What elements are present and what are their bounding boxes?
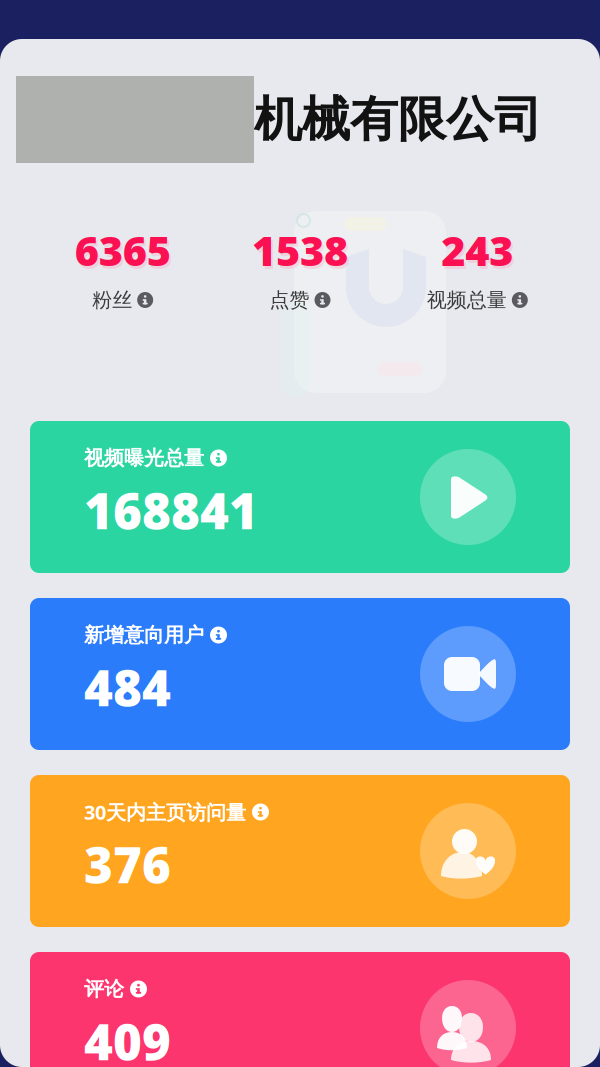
button[interactable]: 评论	[30, 952, 570, 1067]
staticText: 409	[84, 1008, 171, 1067]
button[interactable]: 视频曝光总量	[30, 421, 570, 573]
button[interactable]: 30天内主页访问量	[30, 775, 570, 927]
staticText: 243	[441, 223, 513, 277]
staticText: 6365	[75, 223, 171, 277]
staticText: 6365	[77, 226, 173, 280]
staticText: 30天内主页访问量	[84, 799, 246, 825]
staticText: 评论	[84, 977, 124, 1001]
staticText: 点赞	[269, 288, 309, 312]
staticText: 新增意向用户	[84, 623, 204, 647]
staticText: 1538	[252, 223, 348, 277]
staticText: 168841	[84, 477, 258, 543]
staticText: 机械有限公司	[254, 90, 542, 149]
button[interactable]: 新增意向用户	[30, 598, 570, 750]
staticText: 376	[84, 831, 171, 897]
staticText: 484	[84, 654, 171, 720]
staticText: 243	[443, 226, 515, 280]
button[interactable]: 1538	[252, 232, 348, 310]
button[interactable]: 243	[427, 232, 528, 310]
staticText: 视频曝光总量	[84, 446, 204, 470]
staticText: 1538	[254, 226, 350, 280]
staticText: 粉丝	[92, 288, 132, 312]
button[interactable]: 6365	[75, 232, 171, 310]
staticText: 视频总量	[427, 288, 507, 312]
